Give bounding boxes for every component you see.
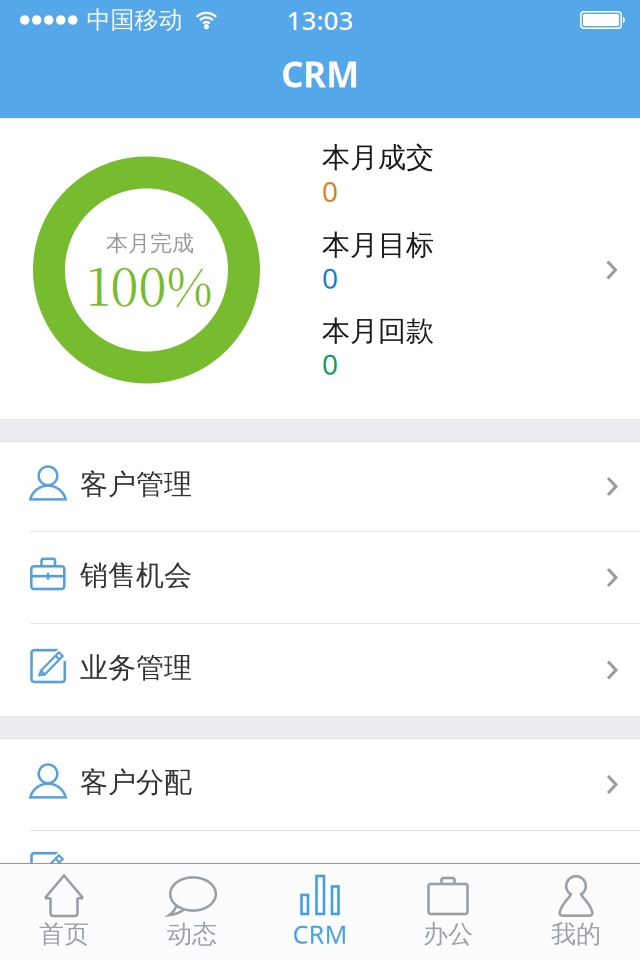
button[interactable]: 办公 (384, 864, 512, 960)
button[interactable]: 业务管理 (0, 624, 640, 716)
button[interactable]: 销售机会 (0, 532, 640, 623)
button[interactable]: 首页 (0, 864, 128, 960)
button[interactable]: 客户管理 (0, 442, 640, 531)
staticText: 0 (322, 259, 338, 297)
staticText: 我的 (551, 918, 601, 950)
staticText: 业务管理 (80, 650, 192, 686)
staticText: CRM (281, 50, 359, 98)
staticText: 0 (322, 345, 338, 383)
staticText: 本月目标 (322, 228, 434, 263)
staticText: 客户管理 (80, 467, 192, 502)
staticText: 本月完成 (106, 230, 194, 257)
staticText: CRM (292, 917, 347, 951)
staticText: 本月回款 (322, 314, 434, 349)
staticText: 首页 (39, 918, 89, 950)
button[interactable]: CRM (256, 864, 384, 960)
button[interactable]: 客户分配 (0, 739, 640, 830)
button[interactable]: 更多 (0, 831, 640, 923)
staticText: 办公 (423, 918, 473, 950)
staticText: 13:03 (286, 2, 353, 38)
staticText: 动态 (167, 918, 217, 950)
button[interactable]: 我的 (512, 864, 640, 960)
staticText: 0 (322, 172, 338, 210)
staticText: 中国移动 (86, 5, 182, 35)
staticText: 100% (86, 248, 212, 320)
staticText: 销售机会 (80, 558, 192, 593)
button[interactable]: 本月完成 (0, 118, 640, 419)
button[interactable]: 动态 (128, 864, 256, 960)
staticText: 客户分配 (80, 765, 192, 800)
staticText: 本月成交 (322, 140, 434, 175)
